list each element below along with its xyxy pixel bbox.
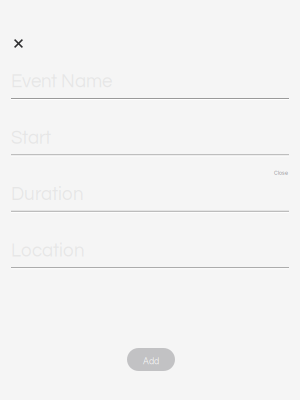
button[interactable]: Close bbox=[268, 168, 288, 178]
button[interactable]: Duration bbox=[11, 185, 289, 213]
staticText: Event Name bbox=[11, 72, 112, 91]
staticText: Location bbox=[11, 241, 85, 260]
button[interactable]: Location bbox=[11, 241, 289, 269]
staticText: Close bbox=[274, 170, 288, 176]
staticText: Duration bbox=[11, 185, 84, 204]
staticText: Add bbox=[143, 357, 159, 366]
staticText: Start bbox=[11, 128, 51, 148]
button[interactable]: Start bbox=[11, 128, 289, 156]
button[interactable]: Close bbox=[4, 29, 32, 57]
button[interactable]: Event Name bbox=[11, 72, 289, 100]
button[interactable]: Add bbox=[127, 348, 175, 371]
